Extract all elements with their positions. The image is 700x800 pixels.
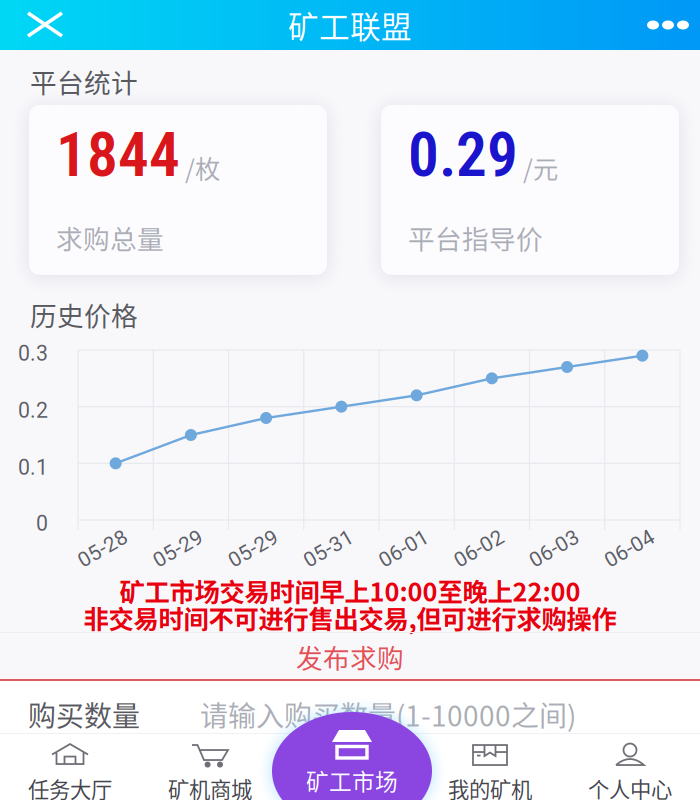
- button[interactable]: 更多: [580, 0, 700, 50]
- staticText: 0.2: [18, 398, 48, 423]
- staticText: 06-04: [602, 536, 656, 561]
- button[interactable]: 矿工市场: [272, 712, 432, 800]
- staticText: 非交易时间不可进行售出交易,但可进行求购操作: [83, 599, 616, 636]
- staticText: 06-03: [527, 536, 581, 561]
- staticText: 请输入购买数量(1-10000之间): [200, 694, 576, 734]
- staticText: 06-01: [377, 536, 431, 561]
- staticText: /枚: [185, 149, 220, 186]
- button[interactable]: 发布求购: [0, 633, 700, 680]
- staticText: 06-02: [452, 536, 506, 561]
- staticText: 个人中心: [588, 773, 672, 800]
- staticText: 矿工市场交易时间早上10:00至晚上22:00: [119, 572, 580, 609]
- button[interactable]: 关闭: [0, 0, 90, 50]
- staticText: 矿机商城: [168, 773, 252, 800]
- staticText: 矿工联盟: [288, 3, 412, 47]
- staticText: 求购总量: [56, 218, 164, 257]
- staticText: 0.29: [408, 119, 518, 191]
- staticText: 0.1: [18, 455, 48, 480]
- staticText: 我的矿机: [448, 773, 532, 800]
- staticText: 平台统计: [30, 62, 138, 101]
- staticText: 矿工市场: [306, 764, 398, 797]
- staticText: 任务大厅: [28, 773, 112, 800]
- staticText: 发布求购: [296, 637, 404, 676]
- staticText: 0: [36, 511, 48, 536]
- staticText: 05-31: [301, 536, 355, 561]
- button[interactable]: 个人中心: [560, 734, 700, 800]
- staticText: 1844: [56, 119, 180, 191]
- staticText: 平台指导价: [408, 218, 543, 257]
- button[interactable]: 矿机商城: [140, 734, 280, 800]
- staticText: /元: [523, 149, 558, 186]
- staticText: 0.3: [18, 341, 48, 366]
- staticText: 05-28: [76, 536, 130, 561]
- staticText: 05-29: [151, 536, 205, 561]
- staticText: 05-29: [226, 536, 280, 561]
- button[interactable]: 我的矿机: [420, 734, 560, 800]
- button[interactable]: 任务大厅: [0, 734, 140, 800]
- staticText: 历史价格: [30, 295, 138, 334]
- staticText: 购买数量: [28, 694, 140, 734]
